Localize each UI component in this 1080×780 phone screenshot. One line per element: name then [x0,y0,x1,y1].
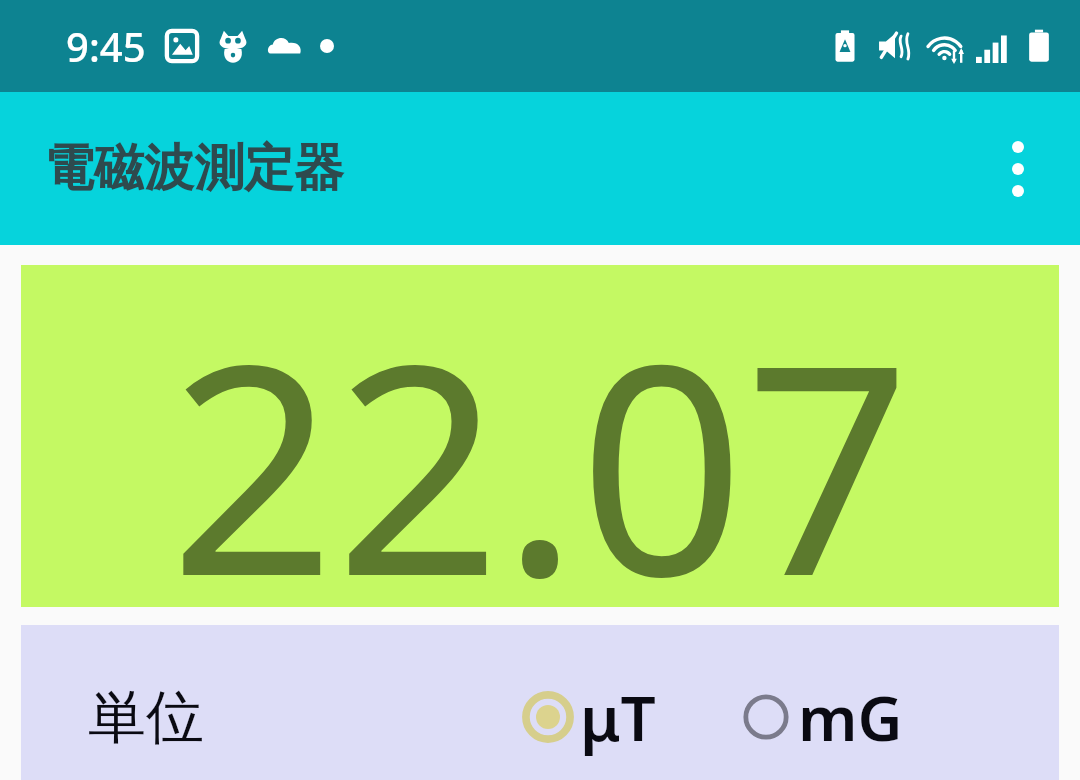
button[interactable]: 22.07 [21,265,1059,607]
staticText: 単位 [88,681,204,754]
staticText: μT [580,675,656,759]
staticText: mG [798,675,903,759]
staticText: 9:45 [66,19,146,73]
button[interactable]: μT [524,675,656,759]
staticText: 22.07 [169,265,911,607]
staticText: 電磁波測定器 [44,137,344,200]
button[interactable]: More options [982,133,1054,205]
button[interactable]: mG [742,675,903,759]
